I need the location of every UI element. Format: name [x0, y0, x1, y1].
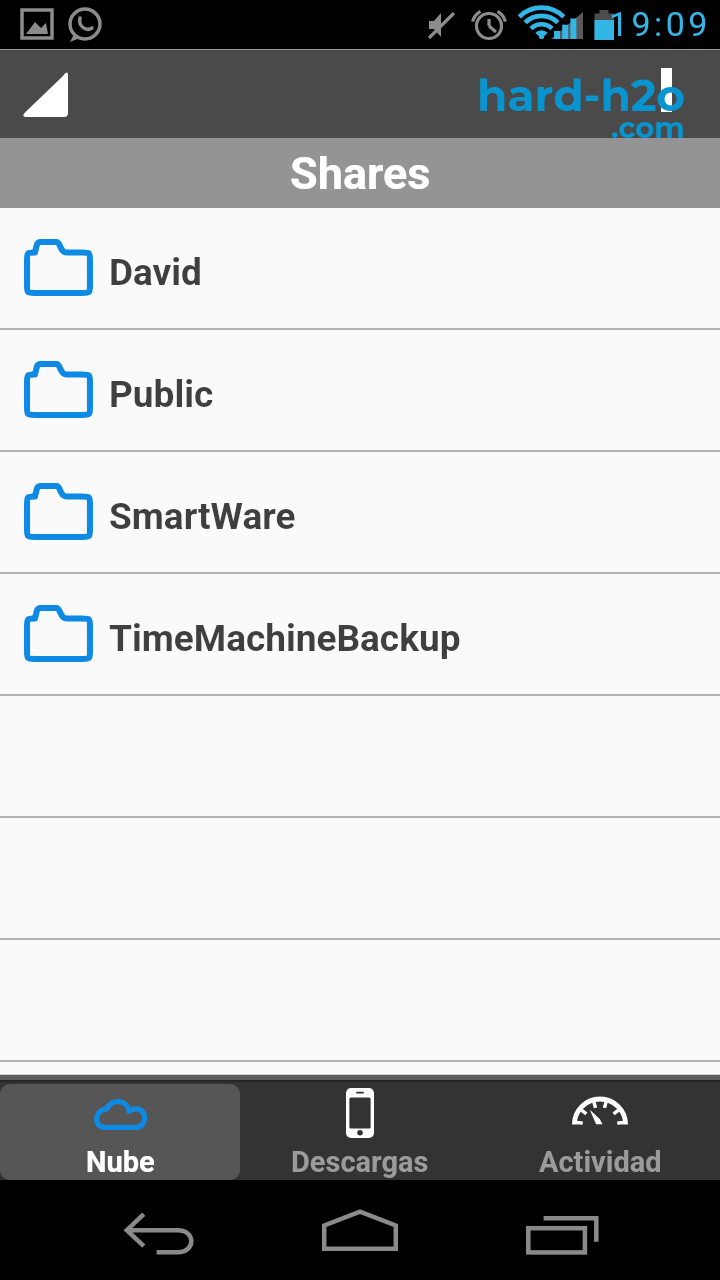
staticText: TimeMachineBackup: [109, 617, 461, 660]
button[interactable]: David: [0, 208, 720, 328]
button[interactable]: TimeMachineBackup: [0, 574, 720, 694]
staticText: Actividad: [539, 1145, 662, 1179]
staticText: David: [109, 251, 202, 294]
button[interactable]: Public: [0, 330, 720, 450]
button[interactable]: SmartWare: [0, 452, 720, 572]
button[interactable]: Descargas: [240, 1084, 480, 1180]
button[interactable]: Back: [4, 54, 86, 134]
staticText: hard-h2o: [477, 68, 686, 122]
staticText: 19:09: [609, 4, 711, 44]
staticText: Shares: [290, 147, 431, 200]
staticText: .com: [611, 110, 685, 145]
staticText: Public: [109, 373, 214, 416]
button[interactable]: hard-h2o.com: [477, 68, 686, 122]
staticText: SmartWare: [109, 495, 296, 538]
button[interactable]: Back: [110, 1200, 210, 1260]
staticText: Descargas: [291, 1145, 429, 1179]
button[interactable]: Home: [310, 1200, 410, 1260]
button[interactable]: Nube: [0, 1084, 240, 1180]
button[interactable]: Actividad: [480, 1084, 720, 1180]
button[interactable]: Recent apps: [518, 1200, 618, 1260]
staticText: Nube: [86, 1145, 155, 1179]
